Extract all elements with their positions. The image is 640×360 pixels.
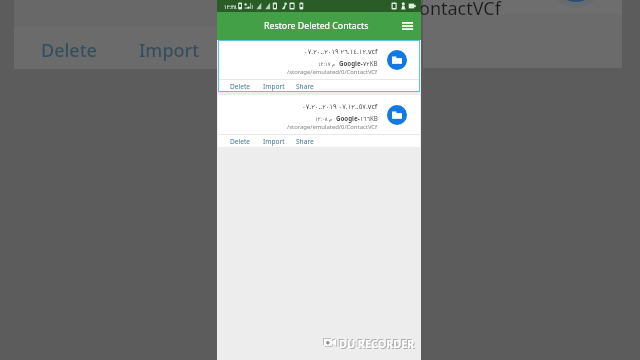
staticText: ١٦٦KB	[360, 114, 378, 122]
staticText: م ١٢:١٧	[318, 60, 336, 67]
button[interactable]: Delete	[230, 137, 251, 146]
staticText: ٢٦.١٤.١٢ ٢٠١٩..٠٧.٢٠.vcf	[304, 47, 378, 56]
staticText: Restore Deleted Contacts	[264, 20, 369, 32]
staticText: ontactVCf	[419, 0, 501, 21]
staticText: ١٢:٣٨	[224, 3, 237, 10]
button[interactable]: Open folder	[387, 105, 407, 125]
staticText: Google-	[336, 114, 360, 122]
staticText: /storage/emulated/0/ContactVCf	[287, 68, 378, 76]
staticText: ٥٧..٠٧.١٢ ٢٠١٩..٠٧.٢٠.vcf	[302, 102, 378, 111]
staticText: DU RECORDER	[340, 337, 416, 349]
staticText: DU RECORDER	[339, 336, 415, 348]
button[interactable]: Share	[296, 137, 314, 146]
staticText: DU RECORDER	[338, 335, 414, 347]
staticText: Google-	[339, 59, 363, 67]
button[interactable]: Menu	[398, 17, 416, 35]
staticText: ٧٢KB	[363, 59, 378, 67]
button[interactable]: Open folder	[387, 50, 407, 70]
staticText: Delete	[41, 38, 97, 63]
button[interactable]: Import	[263, 137, 285, 146]
staticText: /storage/emulated/0/ContactVCf	[287, 123, 378, 131]
button[interactable]: Import	[263, 82, 285, 91]
button[interactable]: Delete	[230, 82, 251, 91]
staticText: Import	[139, 38, 200, 63]
staticText: م ١٢:٠٨	[315, 115, 333, 122]
button[interactable]: Share	[296, 82, 314, 91]
